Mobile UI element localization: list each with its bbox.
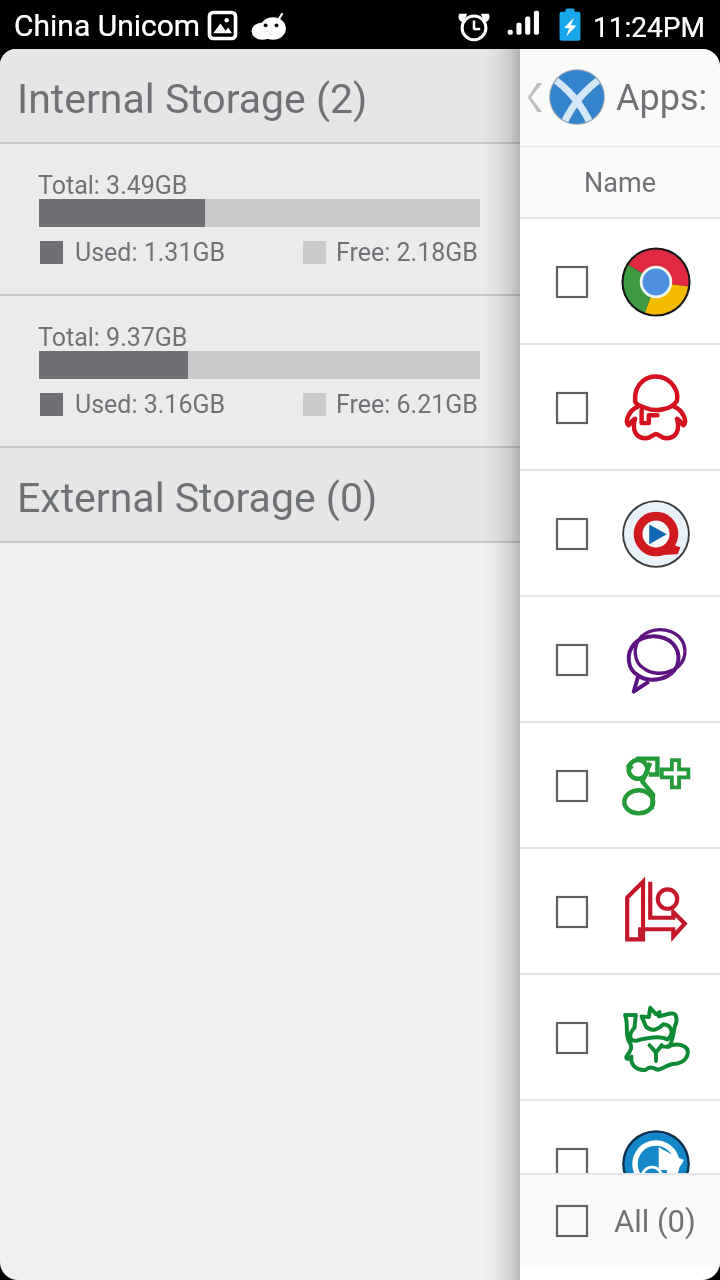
button[interactable] [520,471,720,597]
button[interactable] [520,849,720,975]
button[interactable]: Internal Storage (2) [0,49,520,144]
button[interactable]: Back to Apps [520,49,720,147]
button[interactable] [520,597,720,723]
button[interactable] [520,345,720,471]
staticText: Total: 9.37GB [38,323,188,352]
staticText: 11:24PM [593,11,705,44]
button[interactable] [520,1101,720,1227]
staticText: All (0) [614,1203,696,1239]
staticText: Used: 1.31GB [75,238,226,267]
button[interactable]: Total: 3.49GB [0,144,520,296]
button[interactable]: Total: 9.37GB [0,296,520,448]
staticText: Total: 3.49GB [38,171,188,200]
button[interactable] [520,219,720,345]
staticText: Used: 3.16GB [75,390,226,419]
button[interactable] [520,723,720,849]
button[interactable]: All (0) [520,1173,720,1268]
button[interactable]: Name [520,147,720,219]
button[interactable] [520,975,720,1101]
button[interactable]: External Storage (0) [0,448,520,543]
staticText: Apps: [616,77,708,119]
staticText: External Storage (0) [17,474,378,522]
staticText: Name [584,167,656,199]
staticText: Free: 6.21GB [336,390,478,419]
staticText: Internal Storage (2) [17,75,368,123]
staticText: China Unicom [14,8,201,43]
staticText: Free: 2.18GB [336,238,478,267]
